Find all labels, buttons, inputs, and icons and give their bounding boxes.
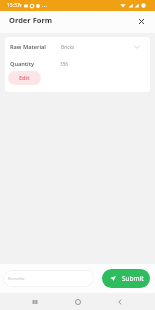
staticText: Remarks: [8, 276, 25, 281]
staticText: Raw Material: [10, 43, 46, 51]
staticText: 356: [60, 61, 143, 67]
button[interactable]: Edit: [8, 71, 41, 85]
button[interactable]: Remarks: [3, 270, 94, 287]
button[interactable]: Raw Material: [5, 41, 150, 52]
staticText: Order Form: [9, 15, 53, 25]
staticText: Edit: [19, 74, 30, 82]
staticText: Submit: [122, 274, 144, 283]
staticText: Quantity: [10, 60, 35, 68]
button[interactable]: Submit: [102, 269, 150, 288]
button[interactable]: Back: [112, 294, 128, 310]
staticText: Bricks: [61, 44, 134, 50]
button[interactable]: Recents: [27, 294, 43, 310]
button[interactable]: Home: [70, 294, 86, 310]
button[interactable]: Close: [134, 14, 148, 28]
staticText: 15:37: [7, 2, 20, 9]
